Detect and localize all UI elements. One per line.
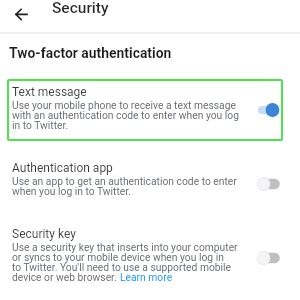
button[interactable]: Turn off	[253, 100, 283, 120]
button[interactable]: Security key	[0, 198, 300, 286]
button[interactable]: Learn more	[120, 271, 173, 283]
button[interactable]: Authentication app	[0, 132, 300, 198]
staticText: Two-factor authentication	[9, 45, 172, 61]
staticText: Use a security key that inserts into you…	[12, 241, 238, 274]
staticText: Learn more	[120, 271, 173, 283]
button[interactable]: Text message	[0, 85, 300, 132]
staticText: device or web browser.	[12, 271, 120, 283]
button[interactable]: Back	[14, 6, 30, 23]
staticText: Security key	[12, 227, 76, 241]
staticText: Text message	[12, 85, 87, 99]
staticText: Use your mobile phone to receive a text …	[12, 99, 239, 132]
staticText: Security	[52, 0, 109, 17]
staticText: Use an app to get an authentication code…	[12, 175, 237, 198]
staticText: Authentication app	[12, 161, 113, 175]
button[interactable]: Turn on	[253, 174, 283, 194]
button[interactable]: Turn on	[253, 248, 283, 268]
